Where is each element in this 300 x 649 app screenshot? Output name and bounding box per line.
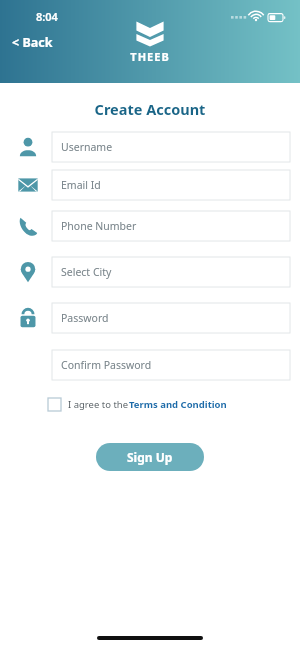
- button[interactable]: Select City: [52, 257, 290, 287]
- staticText: Sign Up: [127, 449, 173, 465]
- staticText: I agree to the: [68, 398, 129, 411]
- button[interactable]: Confirm Password: [52, 350, 290, 380]
- button[interactable]: I agree to the: [48, 395, 227, 413]
- staticText: Create Account: [0, 99, 300, 119]
- button[interactable]: Username: [16, 135, 40, 159]
- button[interactable]: Phone: [16, 214, 40, 238]
- staticText: Password: [61, 311, 109, 325]
- button[interactable]: Username: [52, 132, 290, 162]
- button[interactable]: Sign Up: [96, 443, 204, 471]
- button[interactable]: < Back: [12, 34, 53, 51]
- button[interactable]: Password: [16, 306, 40, 330]
- button[interactable]: Phone Number: [52, 211, 290, 241]
- staticText: Username: [61, 140, 113, 154]
- staticText: Confirm Password: [61, 358, 152, 372]
- staticText: Select City: [61, 265, 112, 279]
- button[interactable]: Password: [52, 303, 290, 333]
- button[interactable]: Email: [16, 173, 40, 197]
- staticText: Phone Number: [61, 219, 137, 233]
- staticText: THEEB: [110, 49, 190, 64]
- staticText: Email Id: [61, 178, 101, 192]
- button[interactable]: Terms and Condition: [129, 398, 227, 411]
- staticText: < Back: [12, 34, 53, 51]
- staticText: 8:04: [36, 9, 58, 24]
- button[interactable]: City: [16, 260, 40, 284]
- button[interactable]: Email Id: [52, 170, 290, 200]
